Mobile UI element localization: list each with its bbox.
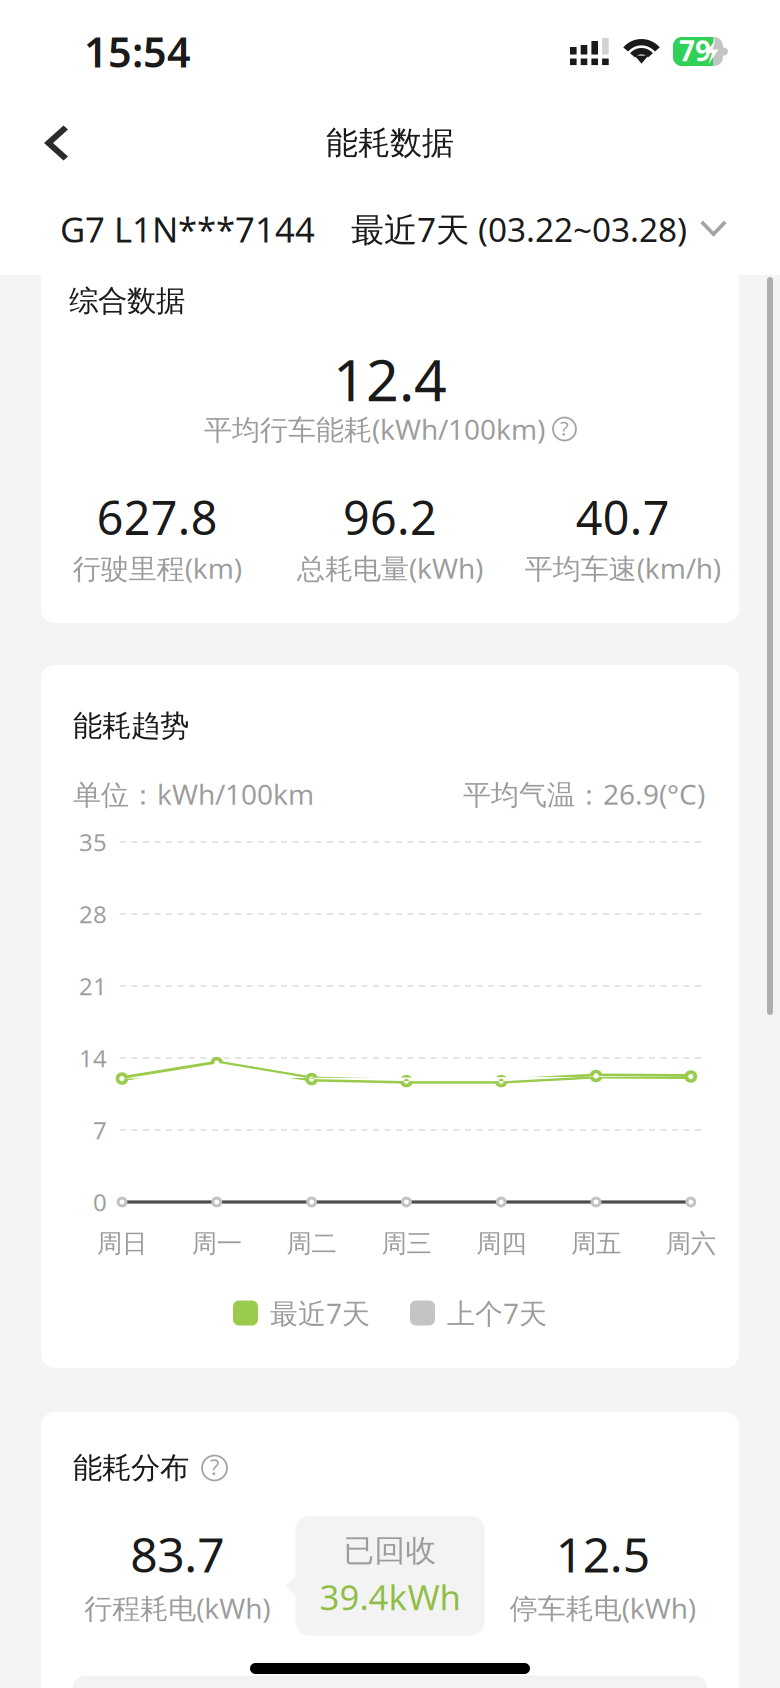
staticText: 28: [79, 898, 107, 930]
staticText: 已回收: [343, 1532, 436, 1570]
staticText: 12.4: [333, 341, 447, 417]
staticText: 96.2: [343, 486, 437, 548]
staticText: 上个7天: [447, 1294, 547, 1332]
staticText: G7 L1N***7144: [60, 206, 315, 252]
staticText: 0: [93, 1186, 107, 1218]
staticText: 12.5: [556, 1522, 650, 1586]
staticText: 周二: [287, 1228, 337, 1259]
staticText: 综合数据: [69, 283, 185, 319]
staticText: 行驶里程(km): [73, 549, 242, 587]
staticText: 单位：kWh/100km: [73, 775, 314, 813]
staticText: 平均行车能耗(kWh/100km): [204, 410, 545, 448]
staticText: 39.4kWh: [319, 1574, 460, 1620]
button[interactable]: 最近7天 (03.22~03.28): [351, 207, 728, 251]
staticText: 最近7天: [270, 1294, 370, 1332]
staticText: 平均车速(km/h): [525, 549, 721, 587]
staticText: 627.8: [97, 486, 218, 548]
staticText: 周三: [381, 1228, 431, 1259]
staticText: 最近7天 (03.22~03.28): [351, 207, 687, 251]
staticText: 79: [679, 32, 711, 69]
staticText: 周一: [192, 1228, 242, 1259]
staticText: 周五: [571, 1228, 621, 1259]
staticText: 行程耗电(kWh): [84, 1589, 270, 1626]
staticText: 7: [93, 1114, 107, 1146]
staticText: ?: [560, 415, 569, 441]
staticText: 15:54: [84, 24, 191, 79]
staticText: 能耗趋势: [73, 708, 189, 744]
staticText: 停车耗电(kWh): [510, 1589, 696, 1626]
staticText: 35: [79, 826, 107, 858]
staticText: 总耗电量(kWh): [297, 549, 483, 587]
staticText: 40.7: [576, 486, 670, 548]
staticText: 能耗数据: [326, 123, 454, 163]
staticText: 21: [79, 970, 107, 1002]
staticText: 周四: [476, 1228, 526, 1259]
staticText: 周六: [666, 1228, 716, 1259]
staticText: 平均气温：26.9(°C): [463, 775, 705, 813]
button[interactable]: 返回: [0, 107, 99, 178]
staticText: 周日: [97, 1228, 147, 1259]
staticText: ?: [210, 1453, 219, 1481]
staticText: 能耗分布: [73, 1450, 189, 1486]
staticText: 83.7: [130, 1522, 224, 1586]
staticText: 14: [79, 1042, 107, 1074]
